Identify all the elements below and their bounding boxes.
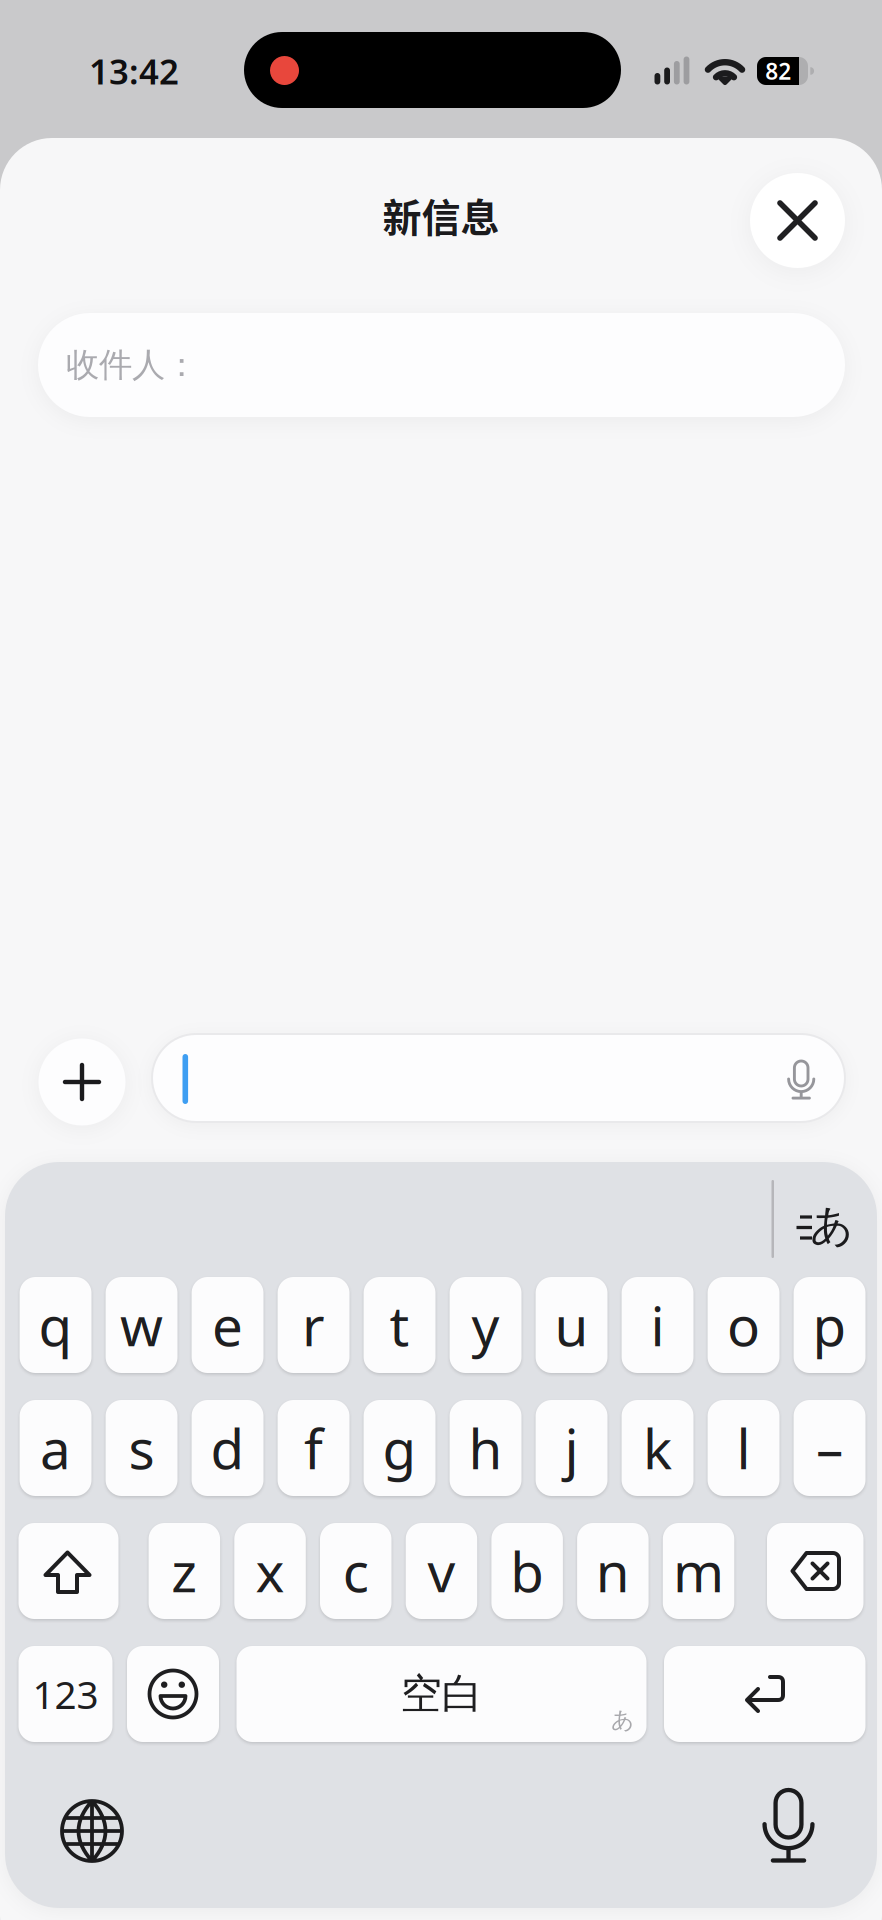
button[interactable]: o (708, 1277, 779, 1373)
staticText: s (129, 1412, 155, 1484)
staticText: l (737, 1412, 751, 1484)
button[interactable]: 听写 (750, 1785, 826, 1869)
staticText: p (813, 1289, 847, 1361)
staticText: w (120, 1289, 163, 1361)
staticText: f (304, 1412, 323, 1484)
button[interactable]: s (106, 1400, 177, 1496)
staticText: あ (611, 1706, 634, 1734)
button[interactable]: 信息输入框 (152, 1034, 845, 1122)
button[interactable]: 空白 (236, 1646, 646, 1742)
staticText: b (510, 1535, 544, 1607)
staticText: 空白 (400, 1669, 482, 1719)
staticText: e (212, 1289, 243, 1361)
staticText: g (383, 1412, 417, 1484)
button[interactable]: 换行 (664, 1646, 865, 1742)
button[interactable]: 听写 (787, 1058, 815, 1103)
staticText: z (171, 1535, 197, 1607)
staticText: m (673, 1535, 724, 1607)
staticText: あ (810, 1199, 854, 1252)
button[interactable]: 切换键盘 (54, 1793, 130, 1869)
button[interactable]: 添加 (38, 1038, 125, 1125)
button[interactable]: t (364, 1277, 435, 1373)
button[interactable]: 123 (18, 1646, 112, 1742)
staticText: q (39, 1289, 73, 1361)
staticText: 新信息 (382, 187, 499, 243)
button[interactable]: 入力モード (795, 1199, 857, 1255)
button[interactable]: x (234, 1523, 306, 1619)
button[interactable]: b (491, 1523, 563, 1619)
staticText: 13:42 (89, 48, 179, 94)
button[interactable]: j (536, 1400, 607, 1496)
staticText: v (427, 1535, 455, 1607)
button[interactable]: – (794, 1400, 865, 1496)
button[interactable]: 删除 (767, 1523, 863, 1619)
staticText: x (256, 1535, 285, 1607)
button[interactable]: v (406, 1523, 477, 1619)
button[interactable]: a (20, 1400, 91, 1496)
button[interactable]: u (536, 1277, 607, 1373)
button[interactable]: y (450, 1277, 521, 1373)
button[interactable]: h (450, 1400, 521, 1496)
staticText: r (302, 1289, 325, 1361)
staticText: d (211, 1412, 245, 1484)
staticText: h (469, 1412, 503, 1484)
button[interactable]: e (192, 1277, 263, 1373)
staticText: 收件人： (66, 344, 198, 385)
button[interactable]: l (708, 1400, 779, 1496)
button[interactable]: m (663, 1523, 734, 1619)
button[interactable]: 表情符号 (127, 1646, 219, 1742)
staticText: y (472, 1289, 500, 1361)
button[interactable]: q (20, 1277, 91, 1373)
button[interactable]: g (364, 1400, 435, 1496)
button[interactable]: d (192, 1400, 263, 1496)
button[interactable]: 收件人： (38, 313, 845, 417)
staticText: i (651, 1289, 665, 1361)
staticText: 123 (32, 1668, 98, 1720)
button[interactable]: w (106, 1277, 177, 1373)
button[interactable]: n (577, 1523, 649, 1619)
button[interactable]: i (622, 1277, 693, 1373)
button[interactable]: Shift (18, 1523, 118, 1619)
staticText: 82 (765, 56, 791, 86)
staticText: c (343, 1535, 369, 1607)
staticText: – (816, 1412, 843, 1484)
staticText: n (596, 1535, 630, 1607)
button[interactable]: p (794, 1277, 865, 1373)
button[interactable]: 关闭 (750, 173, 845, 268)
button[interactable]: r (278, 1277, 349, 1373)
staticText: o (727, 1289, 760, 1361)
button[interactable]: k (622, 1400, 693, 1496)
staticText: u (555, 1289, 589, 1361)
staticText: a (40, 1412, 71, 1484)
button[interactable]: f (278, 1400, 349, 1496)
staticText: t (390, 1289, 410, 1361)
staticText: j (565, 1412, 579, 1484)
button[interactable]: c (320, 1523, 391, 1619)
button[interactable]: z (149, 1523, 220, 1619)
staticText: k (643, 1412, 672, 1484)
